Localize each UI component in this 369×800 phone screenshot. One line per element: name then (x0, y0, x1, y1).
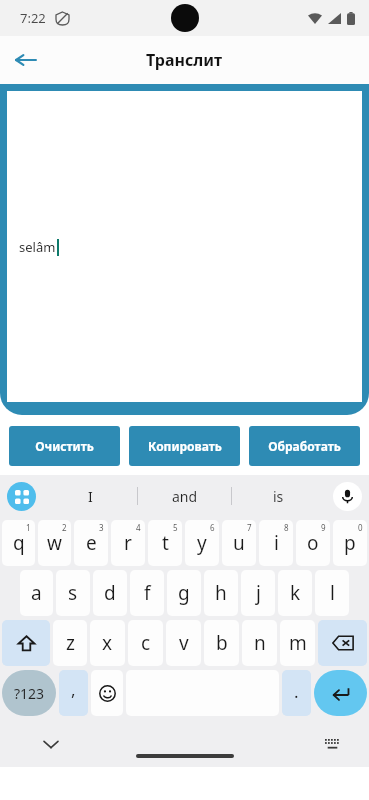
staticText: selâm (19, 238, 56, 256)
staticText: Копировать (148, 438, 222, 454)
staticText: p (344, 530, 356, 556)
button[interactable]: and (138, 475, 231, 517)
staticText: 9 (321, 522, 326, 533)
staticText: ?123 (14, 684, 45, 703)
staticText: r (124, 530, 132, 556)
staticText: . (294, 680, 299, 703)
button[interactable]: q (2, 520, 35, 566)
staticText: 4 (136, 522, 141, 533)
staticText: z (66, 630, 75, 656)
staticText: h (215, 580, 227, 606)
staticText: , (71, 678, 76, 701)
staticText: v (179, 630, 189, 656)
button[interactable]: i (259, 520, 293, 566)
staticText: is (273, 487, 284, 506)
button[interactable]: g (167, 570, 201, 616)
staticText: m (289, 630, 307, 656)
button[interactable]: u (222, 520, 256, 566)
button[interactable]: t (148, 520, 182, 566)
button[interactable]: h (204, 570, 238, 616)
button[interactable]: z (53, 620, 87, 666)
button[interactable]: Emoji (91, 670, 123, 716)
button[interactable]: o (296, 520, 330, 566)
staticText: Обработать (268, 438, 341, 454)
button[interactable]: m (280, 620, 315, 666)
staticText: y (197, 530, 207, 556)
button[interactable]: Keyboard menu (7, 482, 36, 511)
button[interactable]: c (128, 620, 163, 666)
button[interactable]: f (130, 570, 164, 616)
staticText: k (290, 580, 301, 606)
staticText: x (102, 630, 113, 656)
staticText: l (330, 580, 335, 606)
staticText: w (47, 530, 62, 556)
button[interactable]: Enter (314, 670, 367, 716)
button[interactable]: ?123 (2, 670, 56, 716)
button[interactable]: l (315, 570, 349, 616)
staticText: Транслит (146, 49, 223, 71)
button[interactable]: r (111, 520, 145, 566)
staticText: e (86, 530, 97, 556)
staticText: 3 (99, 522, 104, 533)
button[interactable]: y (185, 520, 219, 566)
staticText: f (144, 580, 151, 606)
button[interactable]: Обработать (249, 426, 360, 466)
staticText: 6 (210, 522, 215, 533)
button[interactable]: Shift (2, 620, 50, 666)
staticText: q (13, 530, 25, 556)
button[interactable]: e (74, 520, 108, 566)
button[interactable]: a (20, 570, 53, 616)
button[interactable]: b (204, 620, 239, 666)
button[interactable]: Очистить (9, 426, 120, 466)
button[interactable]: Back (6, 40, 46, 80)
staticText: 7:22 (20, 9, 46, 27)
staticText: d (104, 580, 116, 606)
staticText: o (307, 530, 319, 556)
button[interactable]: . (282, 670, 311, 716)
button[interactable]: k (278, 570, 312, 616)
button[interactable]: Switch keyboard (317, 729, 347, 759)
button[interactable]: x (90, 620, 125, 666)
button[interactable]: j (241, 570, 275, 616)
button[interactable]: n (242, 620, 277, 666)
button[interactable]: Hide keyboard (34, 727, 68, 761)
button[interactable]: s (56, 570, 90, 616)
staticText: 1 (26, 522, 31, 533)
staticText: Очистить (35, 438, 94, 454)
button[interactable]: p (333, 520, 367, 566)
button[interactable]: d (93, 570, 127, 616)
button[interactable]: I (44, 475, 137, 517)
staticText: I (88, 487, 93, 506)
staticText: 2 (62, 522, 67, 533)
staticText: b (216, 630, 228, 656)
staticText: t (162, 530, 169, 556)
button[interactable]: selâm (7, 91, 362, 402)
button[interactable]: Voice input (333, 482, 362, 511)
button[interactable]: Копировать (129, 426, 240, 466)
staticText: 0 (358, 522, 363, 533)
staticText: g (178, 580, 190, 606)
staticText: s (68, 580, 78, 606)
staticText: 5 (173, 522, 178, 533)
staticText: 7 (247, 522, 252, 533)
staticText: i (274, 530, 279, 556)
staticText: a (31, 580, 42, 606)
staticText: j (256, 580, 261, 606)
staticText: n (254, 630, 266, 656)
staticText: 8 (284, 522, 289, 533)
staticText: and (172, 487, 198, 506)
button[interactable]: is (232, 475, 325, 517)
staticText: c (141, 630, 151, 656)
button[interactable]: Backspace (318, 620, 367, 666)
button[interactable]: , (59, 670, 88, 716)
button[interactable]: v (166, 620, 201, 666)
button[interactable]: w (38, 520, 71, 566)
staticText: u (233, 530, 245, 556)
